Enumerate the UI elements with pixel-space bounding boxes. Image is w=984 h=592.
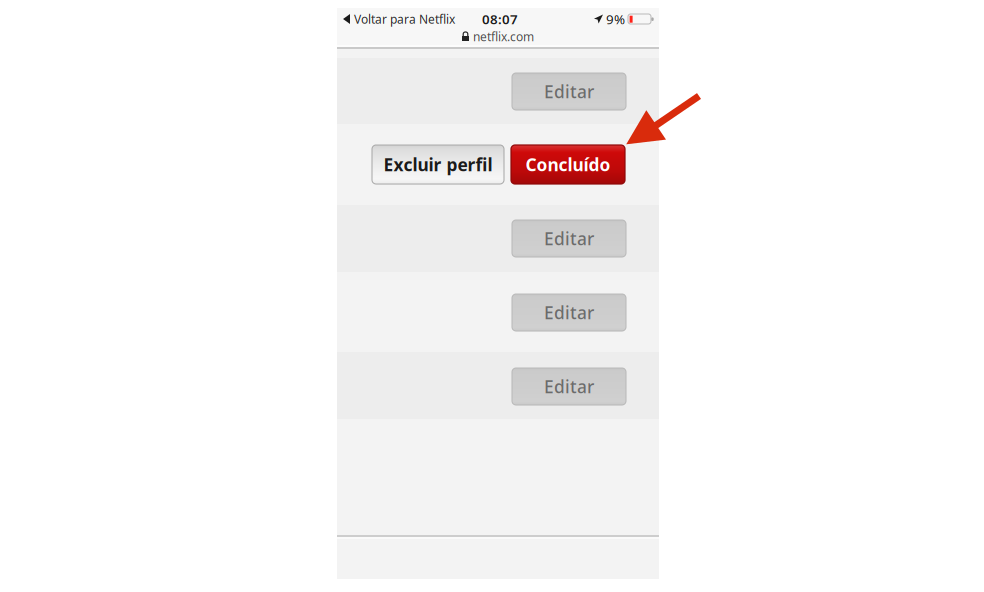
staticText: Editar — [544, 227, 594, 250]
button[interactable]: Excluir perfil — [372, 145, 504, 184]
staticText: Voltar para Netflix — [354, 11, 455, 27]
button[interactable]: Editar — [512, 294, 626, 331]
button[interactable]: Editar — [512, 220, 626, 257]
staticText: 9% — [606, 10, 625, 28]
button[interactable]: Editar — [512, 368, 626, 405]
staticText: Concluído — [525, 153, 610, 176]
staticText: Editar — [544, 375, 594, 398]
staticText: Excluir perfil — [383, 153, 492, 176]
staticText: Editar — [544, 301, 594, 324]
staticText: netflix.com — [473, 28, 534, 44]
button[interactable]: Concluído — [511, 145, 625, 184]
staticText: 08:07 — [482, 10, 518, 28]
button[interactable]: Editar — [512, 73, 626, 110]
button[interactable]: Voltar para Netflix — [337, 8, 461, 30]
staticText: Editar — [544, 80, 594, 103]
